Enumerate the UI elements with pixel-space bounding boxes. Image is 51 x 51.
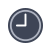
button[interactable]: Clock (0, 0, 51, 51)
